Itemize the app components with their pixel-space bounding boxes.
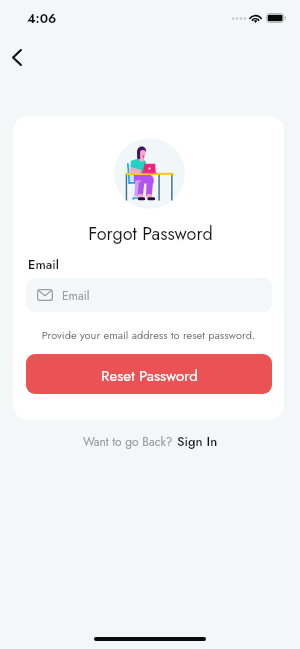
button[interactable]: Back (0, 41, 33, 74)
staticText: Email (28, 255, 59, 274)
button[interactable]: Sign In (177, 432, 218, 451)
staticText: 4:06 (27, 9, 57, 28)
staticText: Email (62, 287, 90, 304)
staticText: Provide your email address to reset pass… (13, 327, 284, 343)
staticText: Sign In (177, 432, 218, 451)
button[interactable]: Email (26, 278, 272, 312)
staticText: Reset Password (101, 365, 198, 387)
staticText: Want to go Back? (83, 433, 173, 450)
button[interactable]: Reset Password (26, 354, 272, 394)
staticText: Forgot Password (15, 221, 284, 247)
